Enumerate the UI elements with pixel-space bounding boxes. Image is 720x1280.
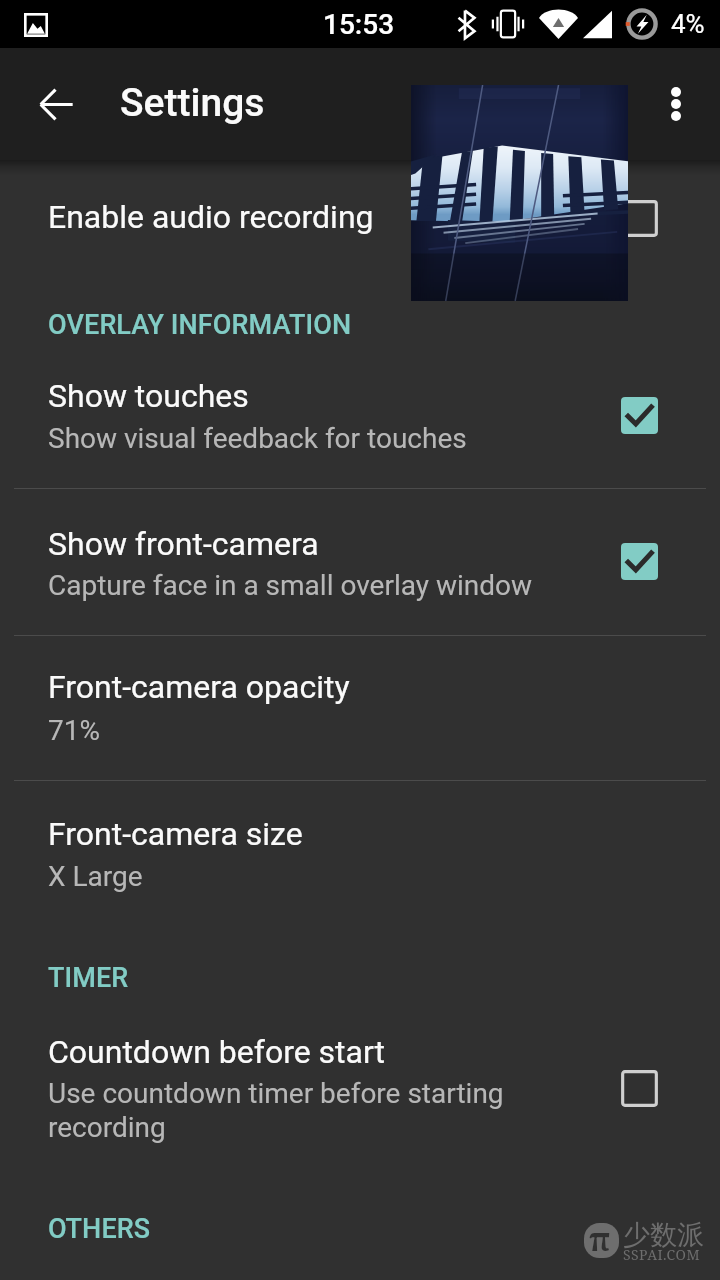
staticText: Capture face in a small overlay window (48, 569, 533, 602)
button[interactable] (0, 636, 720, 780)
staticText: OVERLAY INFORMATION (48, 309, 352, 341)
staticText: Use countdown timer before starting reco… (48, 1077, 518, 1144)
staticText: TIMER (48, 962, 129, 994)
button[interactable]: More options (632, 48, 720, 160)
button[interactable] (0, 350, 720, 488)
button[interactable] (0, 1000, 720, 1152)
staticText: 15:53 (323, 8, 395, 41)
staticText: π (589, 1217, 611, 1253)
button[interactable] (0, 489, 720, 635)
staticText: Show visual feedback for touches (48, 422, 467, 455)
button[interactable]: Show touches (598, 374, 680, 456)
button[interactable] (0, 160, 720, 268)
staticText: X Large (48, 860, 143, 893)
staticText: 71% (48, 714, 100, 747)
staticText: Countdown before start (48, 1033, 386, 1071)
staticText: 少数派 (623, 1218, 704, 1252)
staticText: Enable audio recording (48, 198, 374, 236)
staticText: 4% (671, 9, 705, 39)
staticText: Front-camera size (48, 815, 303, 853)
staticText: OTHERS (48, 1213, 151, 1245)
staticText: Show touches (48, 377, 249, 415)
button[interactable]: Enable audio recording (598, 177, 680, 259)
staticText: Front-camera opacity (48, 668, 350, 706)
staticText: SSPAI.COM (623, 1245, 700, 1264)
staticText: Settings (120, 80, 265, 126)
button[interactable] (0, 781, 720, 931)
button[interactable]: Back (16, 48, 96, 160)
button[interactable]: Countdown before start (598, 1047, 680, 1129)
button[interactable]: Show front-camera (598, 520, 680, 602)
staticText: Show front-camera (48, 525, 319, 563)
